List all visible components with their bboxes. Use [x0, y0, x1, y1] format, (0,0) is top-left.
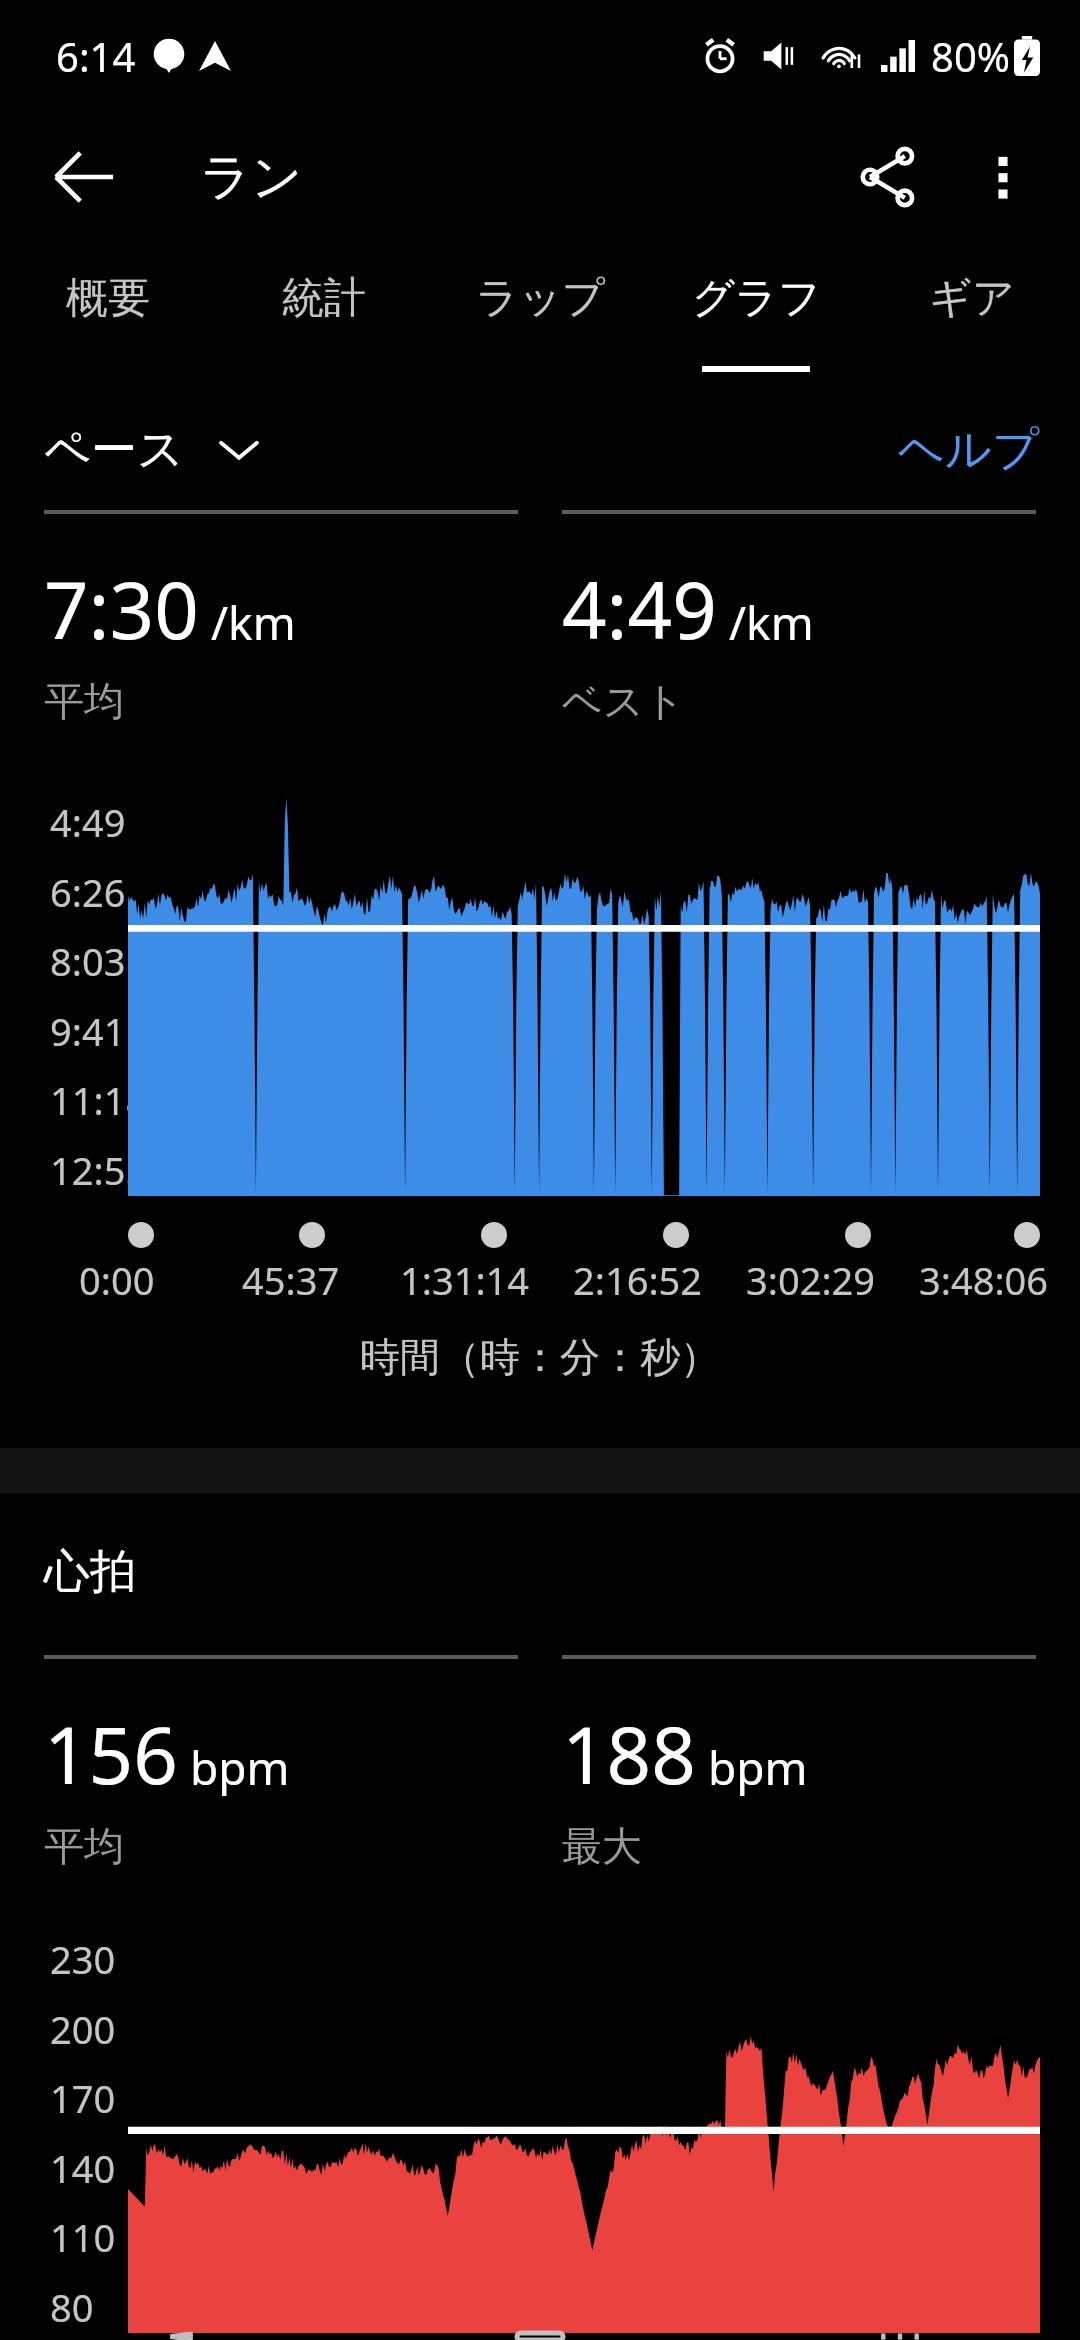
- button[interactable]: Home: [360, 2333, 720, 2340]
- button[interactable]: 概要: [0, 242, 216, 390]
- button[interactable]: Recent apps: [720, 2333, 1080, 2340]
- staticText: 2:16:52: [573, 1254, 703, 1306]
- staticText: 1:31:14: [400, 1254, 530, 1306]
- button[interactable]: 統計: [216, 242, 432, 390]
- staticText: 平均: [44, 1821, 124, 1871]
- button[interactable]: ラップ: [432, 242, 648, 390]
- staticText: /km: [211, 591, 296, 654]
- staticText: 4:49: [50, 796, 126, 848]
- staticText: ギア: [929, 272, 1015, 325]
- staticText: 200: [50, 2003, 116, 2055]
- staticText: 188: [562, 1701, 696, 1807]
- staticText: 80%: [931, 29, 1010, 83]
- staticText: 170: [50, 2072, 116, 2124]
- button[interactable]: Back: [24, 117, 144, 237]
- staticText: 156: [44, 1701, 178, 1807]
- staticText: /km: [729, 591, 814, 654]
- staticText: ベスト: [562, 676, 685, 726]
- button[interactable]: ギア: [864, 242, 1080, 390]
- staticText: 概要: [66, 272, 150, 325]
- staticText: bpm: [708, 1736, 808, 1799]
- staticText: 心拍: [44, 1543, 136, 1601]
- staticText: 11:18: [50, 1074, 148, 1126]
- staticText: 最大: [562, 1821, 642, 1871]
- staticText: 7:30: [44, 556, 199, 662]
- staticText: 9:41: [50, 1005, 126, 1057]
- staticText: 110: [50, 2211, 116, 2263]
- staticText: 0:00: [79, 1254, 155, 1306]
- button[interactable]: Share: [828, 117, 948, 237]
- staticText: 3:48:06: [919, 1254, 1049, 1306]
- staticText: 6:26: [50, 866, 126, 918]
- button[interactable]: グラフ: [648, 242, 864, 390]
- staticText: ペース: [44, 421, 185, 479]
- button[interactable]: More options: [948, 122, 1058, 232]
- staticText: 45:37: [242, 1254, 340, 1306]
- staticText: ラン: [200, 146, 303, 209]
- staticText: 6:14: [56, 29, 136, 83]
- staticText: bpm: [190, 1736, 290, 1799]
- staticText: 時間（時：分：秒）: [0, 1332, 1080, 1382]
- staticText: 12:55: [50, 1144, 148, 1196]
- staticText: グラフ: [692, 272, 821, 325]
- button[interactable]: ペース: [44, 421, 259, 479]
- staticText: 140: [50, 2142, 116, 2194]
- button[interactable]: ヘルプ: [898, 421, 1040, 479]
- staticText: 230: [50, 1933, 116, 1985]
- staticText: 平均: [44, 676, 124, 726]
- staticText: ラップ: [476, 272, 605, 325]
- staticText: 3:02:29: [746, 1254, 876, 1306]
- staticText: 80: [50, 2281, 94, 2333]
- button[interactable]: Back: [0, 2333, 360, 2340]
- staticText: 統計: [282, 272, 366, 325]
- staticText: 4:49: [562, 556, 717, 662]
- staticText: 8:03: [50, 935, 126, 987]
